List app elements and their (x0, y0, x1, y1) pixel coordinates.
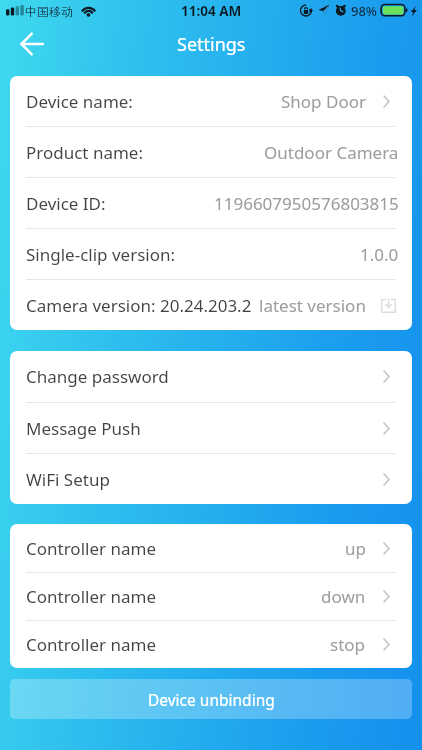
button[interactable]: Controller name (10, 524, 412, 572)
staticText: Device ID: (26, 192, 106, 215)
staticText: Settings (177, 32, 246, 57)
staticText: Device unbinding (148, 689, 275, 710)
staticText: 11:04 AM (181, 2, 242, 20)
button[interactable]: Controller name (10, 573, 412, 620)
button[interactable]: Controller name (10, 621, 412, 668)
button[interactable]: Device ID: (10, 178, 412, 228)
staticText: Camera version: 20.24.203.2 (26, 294, 252, 317)
staticText: Shop Door (281, 90, 366, 113)
staticText: 中国移动 (25, 4, 73, 19)
button[interactable]: Device unbinding (10, 679, 412, 719)
staticText: Controller name (26, 633, 156, 656)
button[interactable]: Download update (381, 298, 396, 313)
staticText: Outdoor Camera (264, 141, 399, 164)
staticText: 1.0.0 (360, 243, 399, 266)
staticText: 1196607950576803815 (214, 192, 399, 215)
staticText: Device name: (26, 90, 133, 113)
button[interactable]: Product name: (10, 127, 412, 177)
button[interactable]: Camera version: 20.24.203.2 (10, 280, 412, 330)
button[interactable]: Change password (10, 351, 412, 402)
staticText: 98% (351, 2, 377, 20)
staticText: Product name: (26, 141, 144, 164)
button[interactable]: Single-clip version: (10, 229, 412, 279)
staticText: Single-clip version: (26, 243, 176, 266)
button[interactable]: Back (14, 26, 50, 62)
staticText: Change password (26, 365, 169, 388)
staticText: up (345, 537, 366, 560)
button[interactable]: Device name: (10, 76, 412, 126)
button[interactable]: Message Push (10, 403, 412, 453)
staticText: down (321, 585, 366, 608)
staticText: Controller name (26, 585, 156, 608)
staticText: stop (330, 633, 366, 656)
button[interactable]: WiFi Setup (10, 454, 412, 504)
staticText: latest version (259, 294, 366, 317)
staticText: WiFi Setup (26, 468, 110, 491)
staticText: Controller name (26, 537, 156, 560)
staticText: Message Push (26, 417, 141, 440)
